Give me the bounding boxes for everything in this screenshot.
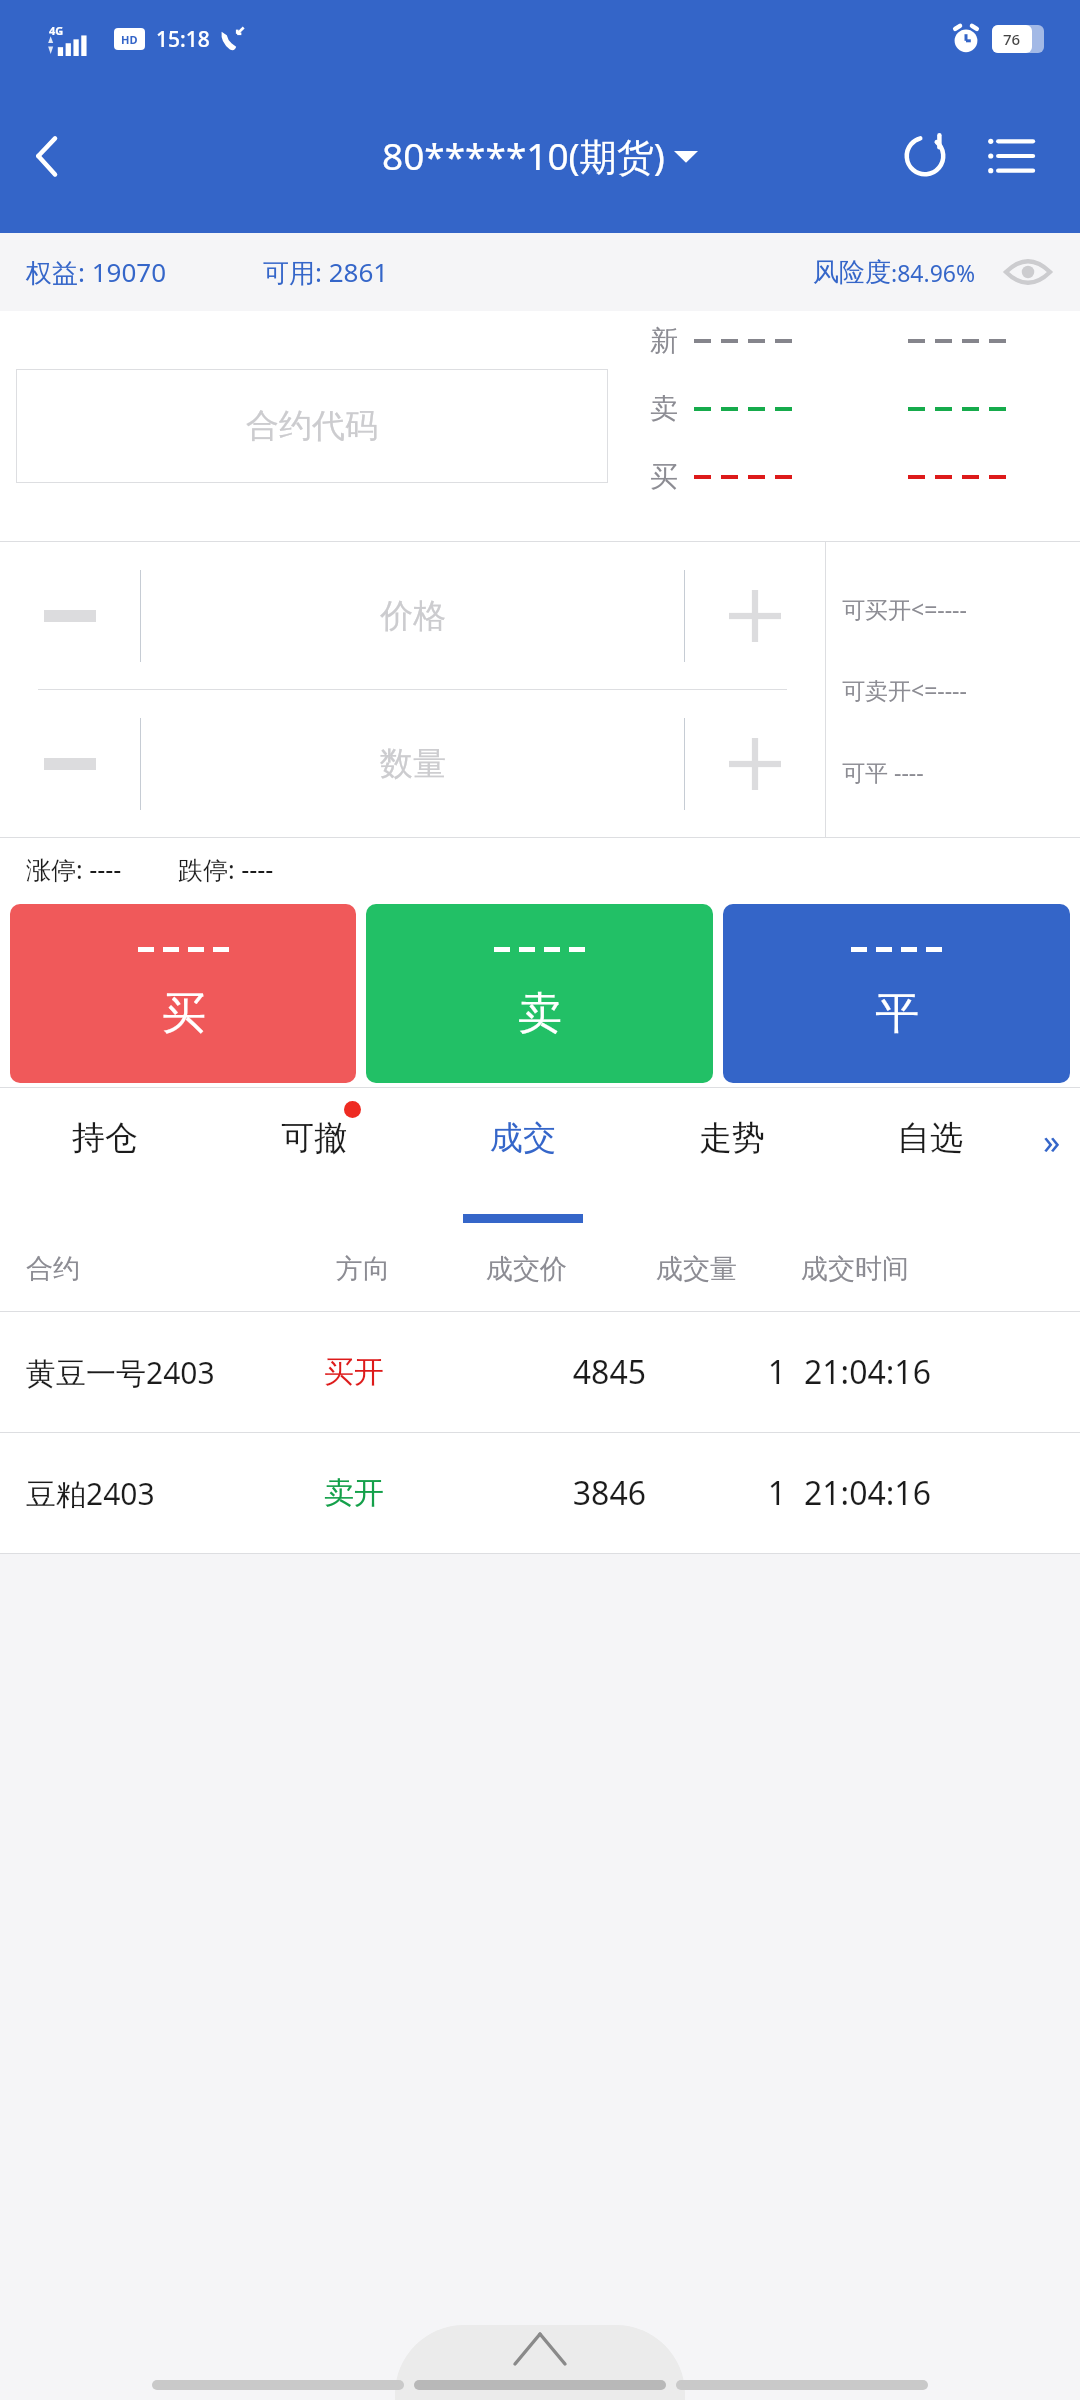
staticText: 可买开<=----	[842, 593, 967, 624]
staticText: 买开	[324, 1353, 476, 1391]
button[interactable]: 黄豆一号2403	[0, 1312, 1080, 1432]
staticText: 风险度	[813, 256, 891, 289]
staticText: 成交量	[656, 1252, 801, 1286]
staticText: 持仓	[72, 1117, 138, 1159]
staticText: 卖	[518, 986, 562, 1041]
staticText: 走势	[699, 1117, 765, 1159]
staticText: 可平 ----	[842, 756, 924, 787]
button[interactable]: 豆粕2403	[0, 1433, 1080, 1553]
staticText: 方向	[336, 1252, 486, 1286]
button[interactable]: Menu	[968, 113, 1054, 199]
staticText: 数量	[380, 743, 446, 785]
button[interactable]: 走势	[627, 1087, 836, 1227]
staticText: 权益: 19070	[26, 254, 167, 290]
staticText: 新	[650, 323, 678, 358]
staticText: 买	[650, 459, 678, 494]
button[interactable]: 自选	[836, 1087, 1024, 1227]
button[interactable]: 合约代码	[16, 369, 608, 483]
button[interactable]: 数量	[141, 690, 684, 837]
staticText: 21:04:16	[804, 1471, 931, 1515]
button[interactable]: Increase 价格	[685, 542, 825, 689]
staticText: HD	[121, 32, 138, 47]
button[interactable]: Nav 1	[414, 2380, 666, 2390]
staticText: 平	[875, 986, 919, 1041]
button[interactable]: Refresh	[882, 113, 968, 199]
staticText: »	[1043, 1118, 1061, 1164]
staticText: 可用: 2861	[263, 254, 389, 290]
staticText: 1	[646, 1471, 786, 1515]
button[interactable]: 买	[10, 904, 356, 1083]
staticText: 76	[1003, 29, 1021, 49]
button[interactable]: 可撤	[209, 1087, 418, 1227]
staticText: 合约	[26, 1252, 336, 1286]
staticText: 卖开	[324, 1474, 476, 1512]
button[interactable]: Nav 2	[676, 2380, 928, 2390]
button[interactable]: 持仓	[0, 1087, 209, 1227]
button[interactable]: 80*****10(期货)	[382, 130, 698, 181]
staticText: 自选	[897, 1117, 963, 1159]
staticText: 买	[162, 986, 206, 1041]
staticText: 卖	[650, 391, 678, 426]
staticText: 80*****10(期货)	[382, 130, 665, 181]
staticText: 涨停: ----	[26, 852, 122, 886]
staticText: 价格	[380, 595, 446, 637]
staticText: 3846	[476, 1471, 646, 1515]
staticText: 成交	[490, 1117, 556, 1159]
button[interactable]: Decrease 数量	[0, 690, 140, 837]
staticText: 成交价	[486, 1252, 656, 1286]
button[interactable]: Back	[0, 108, 96, 204]
staticText: 合约代码	[246, 405, 378, 447]
button[interactable]: 价格	[141, 542, 684, 689]
staticText: 豆粕2403	[26, 1473, 324, 1514]
button[interactable]: 平	[723, 904, 1070, 1083]
staticText: 跌停: ----	[178, 852, 274, 886]
staticText: 可撤	[281, 1117, 347, 1159]
button[interactable]: Nav 0	[152, 2380, 404, 2390]
staticText: 1	[646, 1350, 786, 1394]
staticText: 成交时间	[801, 1252, 909, 1286]
staticText: 21:04:16	[804, 1350, 931, 1394]
staticText: 15:18	[156, 25, 210, 54]
button[interactable]: More tabs	[1024, 1087, 1080, 1227]
staticText: 黄豆一号2403	[26, 1352, 324, 1393]
staticText: 4845	[476, 1350, 646, 1394]
button[interactable]: Increase 数量	[685, 690, 825, 837]
button[interactable]: Decrease 价格	[0, 542, 140, 689]
button[interactable]: 卖	[366, 904, 713, 1083]
button[interactable]: Toggle visibility	[1000, 244, 1056, 300]
staticText: :84.96%	[891, 257, 976, 288]
staticText: 4G	[49, 23, 64, 38]
staticText: 可卖开<=----	[842, 674, 967, 705]
button[interactable]: 成交	[418, 1087, 627, 1227]
